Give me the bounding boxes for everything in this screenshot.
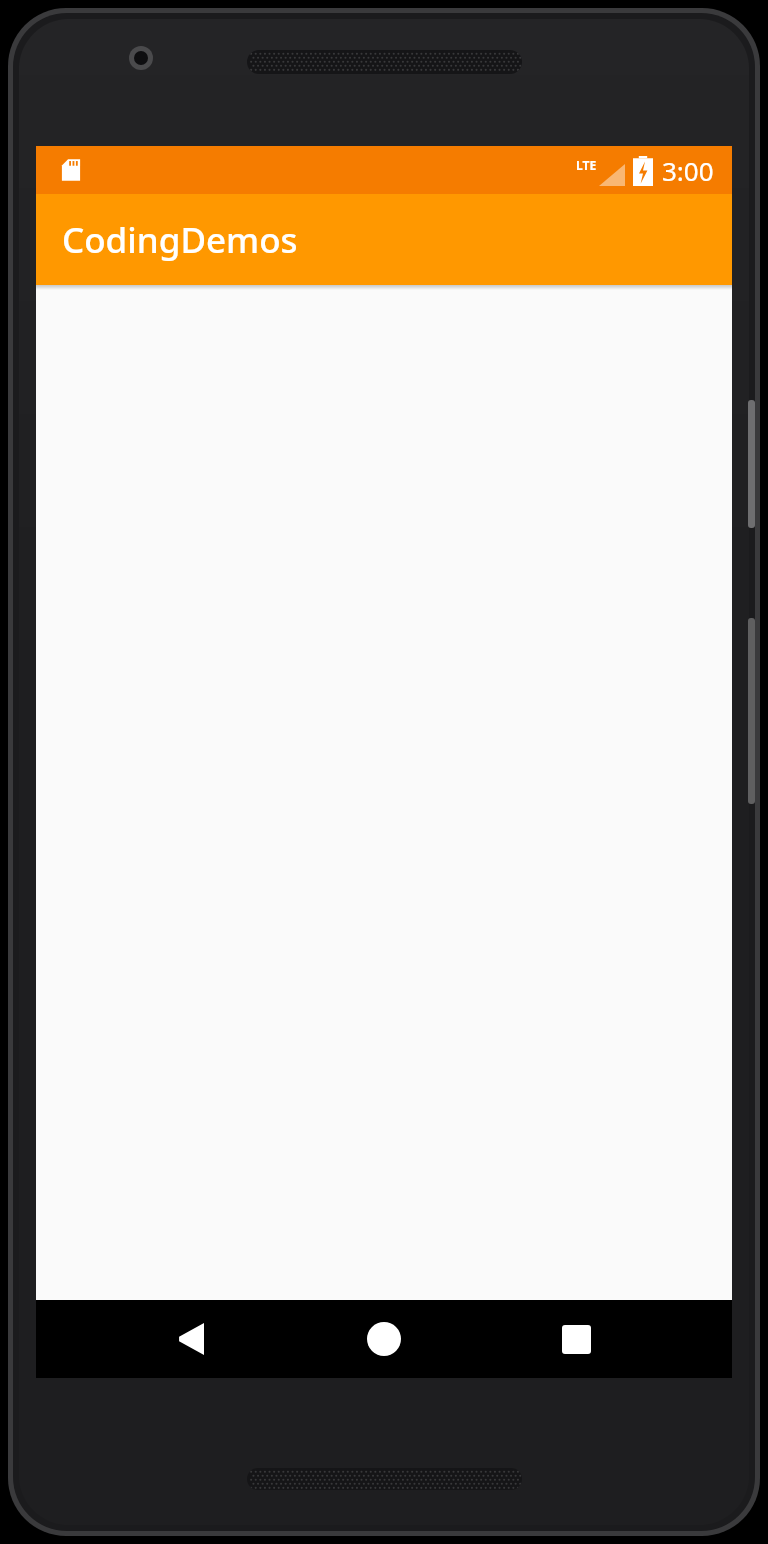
button[interactable]: Back [152,1301,228,1377]
staticText: CodingDemos [62,216,298,264]
button[interactable]: Home [346,1301,422,1377]
staticText: 3:00 [662,153,714,188]
button[interactable]: Recents [538,1301,614,1377]
staticText: LTE [576,157,597,173]
